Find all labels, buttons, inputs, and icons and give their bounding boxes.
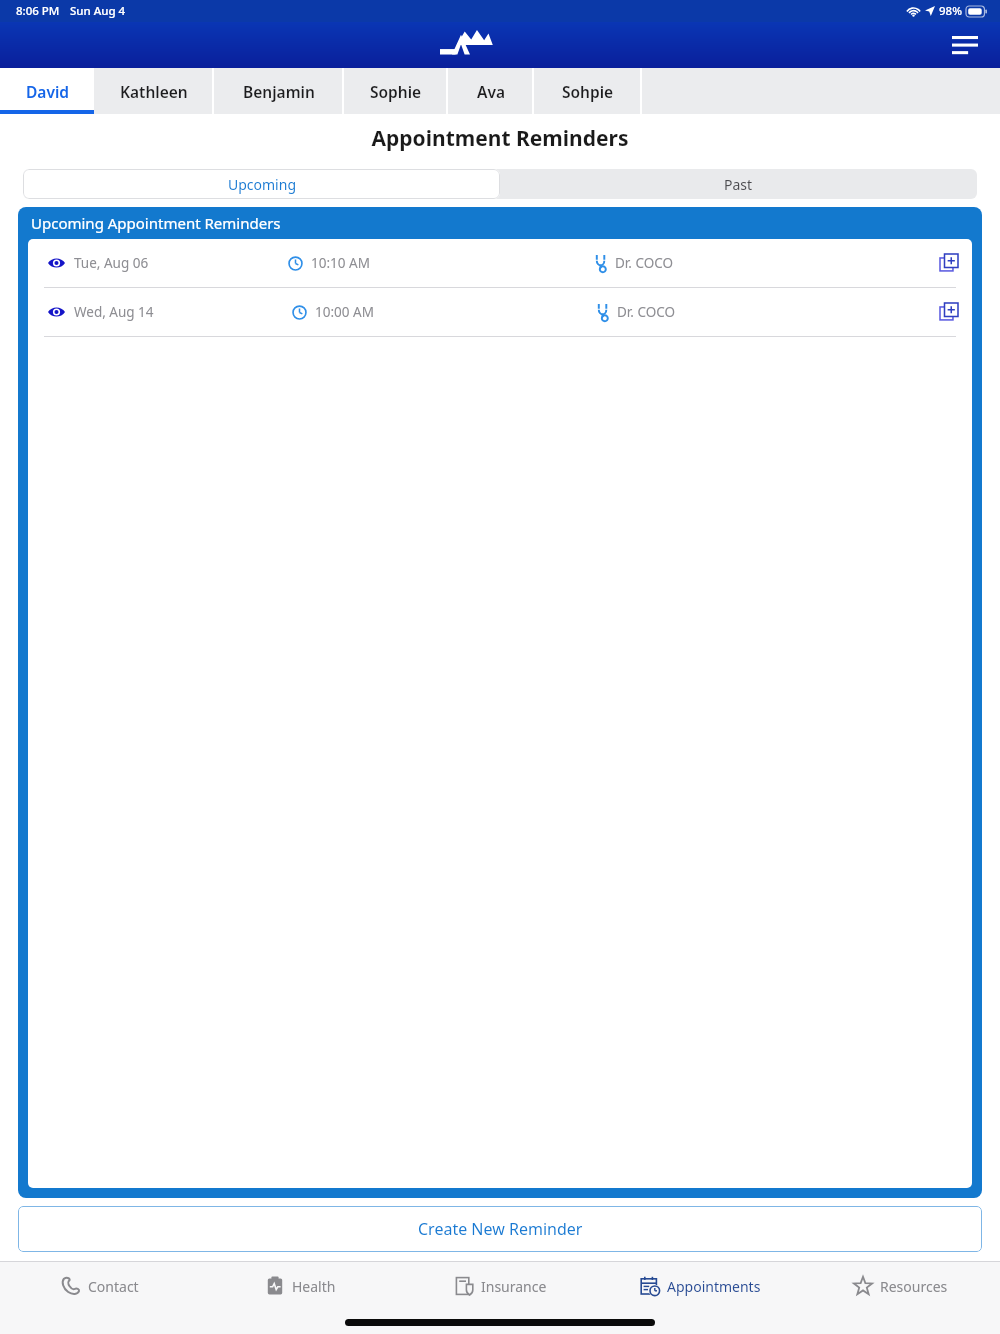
staticText: 8:06 PM — [16, 3, 60, 19]
staticText: Upcoming Appointment Reminders — [31, 213, 281, 233]
button[interactable]: Ava — [448, 68, 534, 114]
staticText: Create New Reminder — [418, 1218, 583, 1240]
button[interactable]: Upcoming — [23, 169, 500, 199]
staticText: Wed, Aug 14 — [74, 303, 154, 321]
staticText: 98% — [939, 3, 962, 19]
button[interactable]: Contact — [0, 1262, 200, 1310]
button[interactable]: Tue, Aug 06 — [28, 239, 972, 287]
button[interactable]: Create New Reminder — [18, 1206, 982, 1252]
staticText: Kathleen — [120, 81, 188, 102]
staticText: Dr. COCO — [615, 254, 674, 272]
staticText: Dr. COCO — [617, 303, 676, 321]
button[interactable]: Benjamin — [214, 68, 344, 114]
button[interactable]: Resources — [800, 1262, 1000, 1310]
staticText: Contact — [88, 1277, 139, 1296]
staticText: Ava — [477, 81, 505, 102]
button[interactable]: Menu — [944, 24, 986, 66]
staticText: Insurance — [481, 1277, 547, 1296]
button[interactable]: Insurance — [400, 1262, 600, 1310]
staticText: Past — [724, 175, 753, 194]
button[interactable]: David — [0, 68, 94, 114]
staticText: Resources — [880, 1277, 948, 1296]
staticText: Upcoming — [228, 175, 296, 194]
button[interactable]: Add to calendar — [932, 295, 966, 329]
staticText: Tue, Aug 06 — [74, 254, 149, 272]
staticText: Benjamin — [243, 81, 315, 102]
staticText: 10:10 AM — [311, 254, 370, 272]
button[interactable]: Sohpie — [534, 68, 642, 114]
staticText: Sophie — [370, 81, 422, 102]
button[interactable]: Add to calendar — [932, 246, 966, 280]
staticText: Appointment Reminders — [0, 124, 1000, 153]
staticText: Health — [292, 1277, 336, 1296]
staticText: 10:00 AM — [315, 303, 374, 321]
button[interactable]: Appointments — [600, 1262, 800, 1310]
staticText: Sun Aug 4 — [70, 3, 126, 19]
button[interactable]: Wed, Aug 14 — [28, 288, 972, 336]
staticText: David — [26, 81, 69, 102]
button[interactable]: Health — [200, 1262, 400, 1310]
staticText: Sohpie — [562, 81, 614, 102]
button[interactable]: Kathleen — [94, 68, 214, 114]
button[interactable]: Past — [500, 169, 977, 199]
staticText: Appointments — [667, 1277, 761, 1296]
button[interactable]: Sophie — [344, 68, 448, 114]
